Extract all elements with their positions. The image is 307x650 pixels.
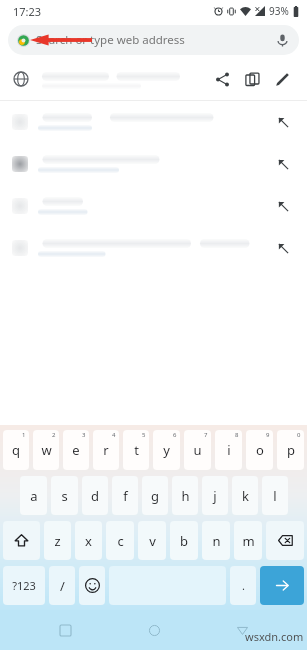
staticText: a	[30, 487, 38, 505]
button[interactable]: r	[93, 430, 119, 470]
staticText: m	[242, 532, 255, 550]
staticText: b	[180, 532, 188, 550]
button[interactable]: y	[153, 430, 180, 470]
button[interactable]: i	[215, 430, 242, 470]
button[interactable]: m	[234, 521, 262, 560]
button[interactable]: v	[138, 521, 166, 560]
staticText: k	[242, 487, 249, 505]
button[interactable]: ?123	[3, 566, 45, 605]
staticText: r	[103, 441, 109, 459]
staticText: f	[123, 487, 128, 505]
button[interactable]: f	[112, 476, 138, 515]
button[interactable]: z	[44, 521, 71, 560]
button[interactable]: Fill suggestion	[0, 185, 307, 227]
staticText: 9	[266, 431, 270, 439]
button[interactable]: Site	[10, 68, 32, 90]
button[interactable]: j	[202, 476, 228, 515]
button[interactable]: g	[142, 476, 168, 515]
staticText: x	[85, 532, 92, 550]
button[interactable]: Voice search	[271, 29, 293, 51]
staticText: h	[181, 487, 190, 505]
button[interactable]: u	[184, 430, 211, 470]
other: Fill suggestion	[271, 152, 295, 176]
other: Fill suggestion	[271, 236, 295, 260]
staticText: v	[149, 532, 156, 550]
button[interactable]: w	[33, 430, 59, 470]
staticText: l	[273, 487, 277, 505]
button[interactable]: Shift	[3, 521, 40, 560]
button[interactable]: Go	[260, 566, 304, 605]
staticText: y	[163, 441, 170, 459]
button[interactable]: Fill suggestion	[0, 227, 307, 269]
button[interactable]: k	[232, 476, 258, 515]
button[interactable]: x	[75, 521, 102, 560]
button[interactable]: Emoji	[79, 566, 105, 605]
staticText: w	[41, 441, 52, 459]
staticText: p	[287, 441, 295, 459]
staticText: c	[117, 532, 124, 550]
staticText: 17:23	[13, 4, 42, 19]
button[interactable]: Fill suggestion	[0, 143, 307, 185]
staticText: i	[227, 441, 231, 459]
staticText: wsxdn.com	[245, 629, 304, 644]
button[interactable]: Backspace	[266, 521, 304, 560]
button[interactable]: l	[262, 476, 288, 515]
button[interactable]: q	[3, 430, 29, 470]
button[interactable]: t	[123, 430, 149, 470]
button[interactable]: n	[202, 521, 230, 560]
button[interactable]: s	[51, 476, 78, 515]
button[interactable]: e	[63, 430, 89, 470]
button[interactable]: Recents	[52, 617, 78, 643]
other: Fill suggestion	[271, 110, 295, 134]
staticText: 6	[173, 431, 177, 439]
staticText: 0	[297, 431, 301, 439]
button[interactable]: Copy	[237, 64, 267, 94]
button[interactable]: /	[49, 566, 75, 605]
staticText: t	[134, 441, 139, 459]
button[interactable]: b	[170, 521, 198, 560]
staticText: .	[242, 578, 245, 593]
staticText: 7	[204, 431, 208, 439]
button[interactable]: Home	[141, 617, 167, 643]
button[interactable]: a	[20, 476, 47, 515]
staticText: z	[54, 532, 61, 550]
button[interactable]: h	[172, 476, 198, 515]
staticText: d	[91, 487, 99, 505]
staticText: 3	[82, 431, 86, 439]
staticText: ?123	[12, 578, 36, 593]
staticText: 93%	[269, 4, 289, 18]
staticText: j	[213, 487, 217, 505]
button[interactable]: p	[277, 430, 304, 470]
button[interactable]: Edit	[267, 64, 297, 94]
button[interactable]: c	[106, 521, 134, 560]
staticText: u	[193, 441, 202, 459]
staticText: 4	[112, 431, 116, 439]
staticText: e	[72, 441, 80, 459]
button[interactable]: o	[246, 430, 273, 470]
staticText: 5	[142, 431, 146, 439]
button[interactable]: Back	[229, 617, 255, 643]
other: Fill suggestion	[271, 194, 295, 218]
button[interactable]: Search or type web address	[8, 25, 299, 55]
staticText: o	[256, 441, 264, 459]
staticText: 8	[235, 431, 239, 439]
staticText: 2	[52, 431, 56, 439]
staticText: Search or type web address	[36, 32, 185, 48]
staticText: q	[12, 441, 20, 459]
staticText: 1	[22, 431, 26, 439]
button[interactable]: d	[82, 476, 108, 515]
staticText: s	[61, 487, 68, 505]
staticText: /	[60, 577, 65, 595]
button[interactable]: Share	[207, 64, 237, 94]
button[interactable]: .	[230, 566, 256, 605]
staticText: n	[212, 532, 221, 550]
staticText: g	[151, 487, 159, 505]
button[interactable]: Fill suggestion	[0, 101, 307, 143]
